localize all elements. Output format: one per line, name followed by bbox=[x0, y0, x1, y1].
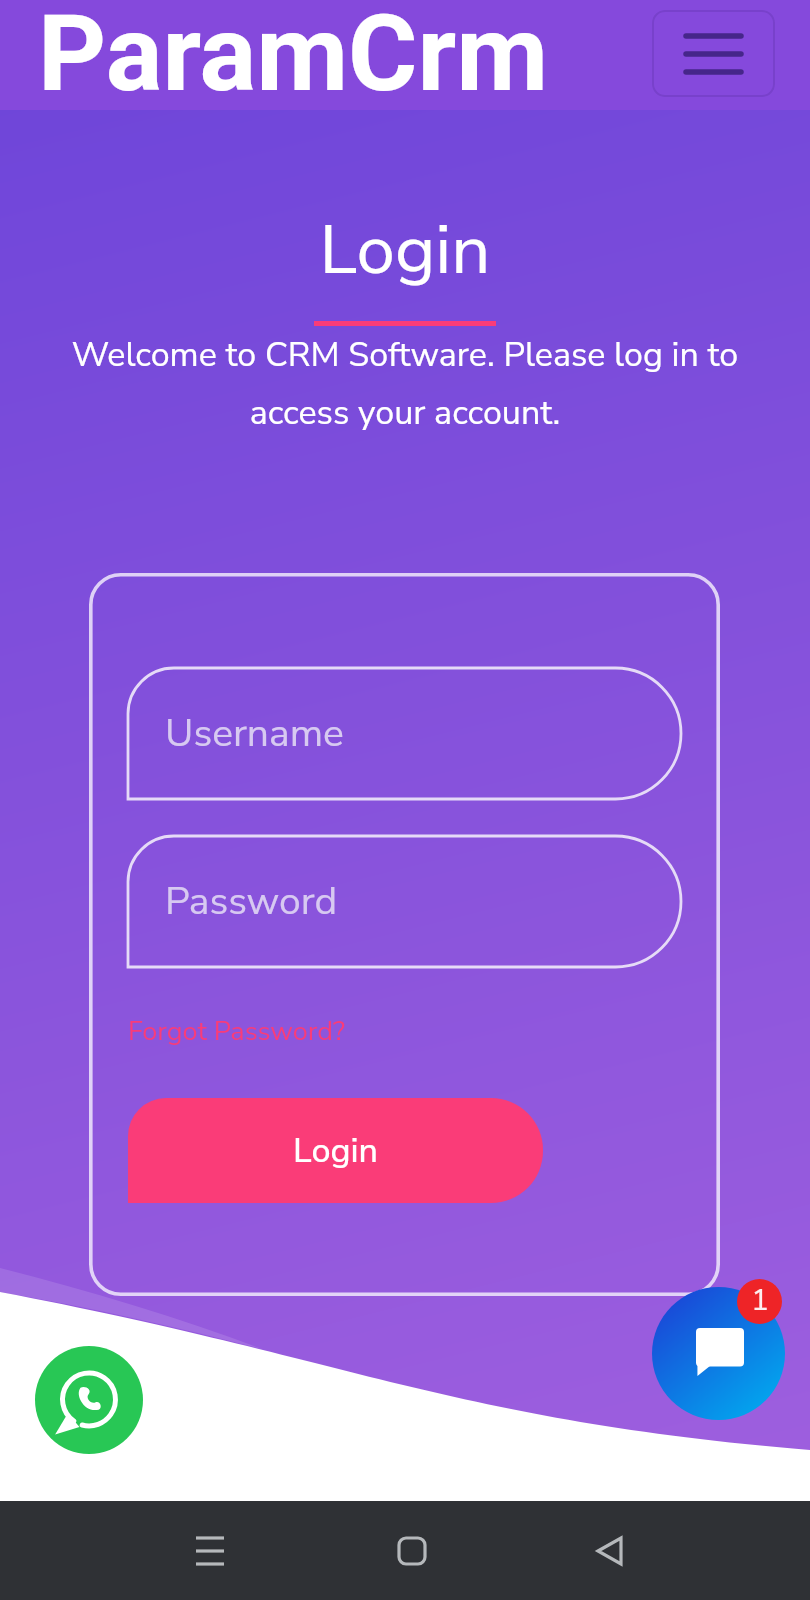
button[interactable]: Home bbox=[312, 1501, 512, 1600]
button[interactable]: Login bbox=[128, 1098, 543, 1203]
staticText: Password bbox=[165, 875, 338, 928]
button[interactable]: Open navigation menu bbox=[652, 10, 775, 97]
staticText: ParamCrm bbox=[38, 0, 549, 102]
button[interactable]: Forgot Password? bbox=[128, 1013, 346, 1050]
button[interactable]: Recent apps bbox=[110, 1501, 310, 1600]
button[interactable]: Open chat bbox=[652, 1287, 785, 1420]
staticText: 1 bbox=[751, 1280, 769, 1321]
staticText: Username bbox=[165, 707, 344, 760]
staticText: Login bbox=[0, 203, 810, 297]
button[interactable]: Username bbox=[128, 668, 681, 799]
button[interactable]: Back bbox=[510, 1501, 710, 1600]
staticText: Login bbox=[293, 1128, 379, 1174]
button[interactable]: Chat on WhatsApp bbox=[35, 1346, 143, 1454]
staticText: Welcome to CRM Software. Please log in t… bbox=[45, 332, 765, 436]
button[interactable]: Password bbox=[128, 836, 681, 967]
